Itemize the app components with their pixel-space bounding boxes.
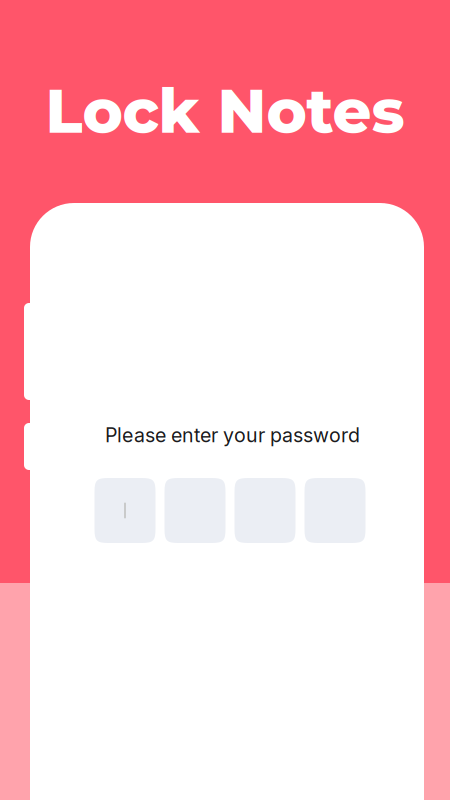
button[interactable]: Passcode digit 3 bbox=[234, 478, 295, 543]
staticText: Lock Notes bbox=[45, 74, 404, 148]
button[interactable]: Passcode digit 4 bbox=[304, 478, 365, 543]
staticText: Please enter your password bbox=[105, 423, 360, 447]
button[interactable]: Passcode digit 2 bbox=[164, 478, 225, 543]
button[interactable]: Passcode digit 1 bbox=[94, 478, 155, 543]
